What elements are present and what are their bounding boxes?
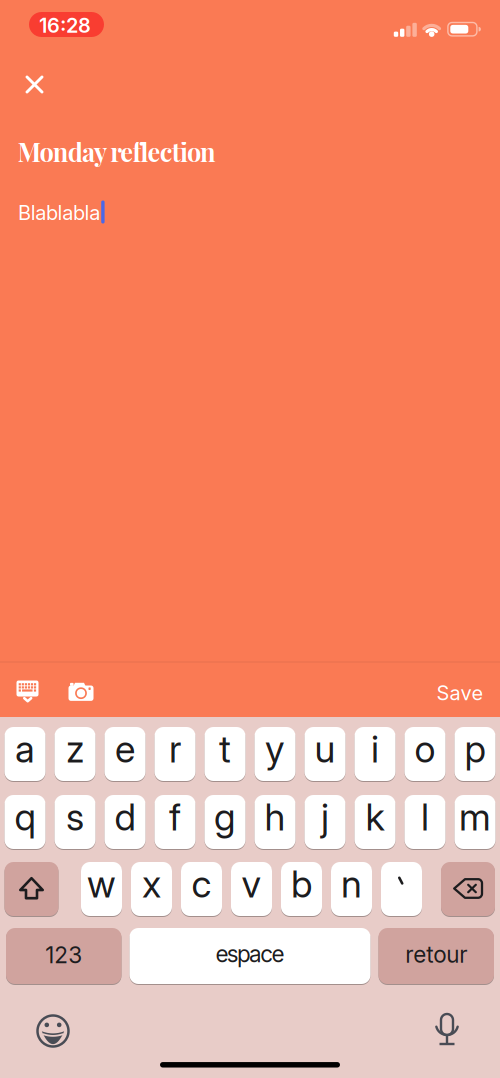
staticText: n — [341, 861, 362, 907]
staticText: t — [219, 726, 231, 772]
button[interactable]: y — [254, 727, 295, 781]
staticText: l — [421, 794, 429, 840]
staticText: g — [214, 794, 236, 840]
button[interactable]: n — [331, 862, 372, 916]
button[interactable]: z — [54, 727, 95, 781]
button[interactable]: Return — [378, 928, 494, 984]
button[interactable]: t — [204, 727, 245, 781]
staticText: v — [241, 861, 261, 907]
staticText: o — [414, 726, 435, 772]
staticText: h — [264, 794, 285, 840]
button[interactable]: g — [204, 795, 245, 849]
staticText: e — [115, 726, 135, 772]
button[interactable]: Delete — [441, 862, 495, 916]
button[interactable]: b — [281, 862, 322, 916]
button[interactable]: Shift — [4, 862, 58, 916]
button[interactable]: m — [454, 795, 495, 849]
button[interactable]: j — [304, 795, 345, 849]
staticText: p — [464, 726, 485, 772]
staticText: j — [321, 794, 329, 840]
staticText: 16:28 — [39, 13, 91, 38]
button[interactable]: Close — [17, 67, 52, 102]
button[interactable]: l — [404, 795, 445, 849]
button[interactable]: i — [354, 727, 395, 781]
staticText: w — [87, 861, 116, 907]
staticText: b — [291, 861, 312, 907]
button[interactable]: a — [4, 727, 45, 781]
staticText: Save — [436, 681, 483, 705]
button[interactable]: s — [54, 795, 95, 849]
staticText: s — [66, 794, 84, 840]
staticText: z — [66, 726, 84, 772]
button[interactable]: f — [154, 795, 195, 849]
button[interactable]: Numbers — [6, 928, 121, 984]
button[interactable]: Save — [430, 677, 489, 709]
button[interactable]: Backtick — [381, 862, 422, 916]
staticText: 123 — [45, 941, 82, 969]
staticText: u — [314, 726, 335, 772]
staticText: y — [265, 726, 285, 772]
button[interactable]: u — [304, 727, 345, 781]
button[interactable]: q — [4, 795, 45, 849]
staticText: m — [459, 794, 491, 840]
staticText: f — [169, 794, 181, 840]
button[interactable]: Emoji — [36, 1014, 70, 1048]
button[interactable]: o — [404, 727, 445, 781]
button[interactable]: Screen recording — [29, 12, 104, 37]
button[interactable]: r — [154, 727, 195, 781]
staticText: Blablabla — [18, 200, 100, 225]
button[interactable]: h — [254, 795, 295, 849]
staticText: i — [371, 726, 379, 772]
button[interactable]: e — [104, 727, 145, 781]
button[interactable]: v — [231, 862, 272, 916]
staticText: q — [14, 794, 35, 840]
button[interactable]: Dismiss keyboard — [8, 672, 46, 710]
button[interactable]: w — [81, 862, 122, 916]
button[interactable]: d — [104, 795, 145, 849]
button[interactable]: Dictation — [435, 1013, 459, 1047]
staticText: c — [191, 861, 211, 907]
staticText: k — [365, 794, 384, 840]
staticText: retour — [405, 941, 467, 968]
staticText: a — [15, 726, 35, 772]
button[interactable]: espace — [129, 928, 370, 984]
button[interactable]: c — [181, 862, 222, 916]
staticText: x — [142, 861, 161, 907]
staticText: Monday reflection — [17, 134, 216, 168]
staticText: d — [114, 794, 135, 840]
button[interactable]: p — [454, 727, 495, 781]
button[interactable]: k — [354, 795, 395, 849]
button[interactable]: Camera — [62, 676, 100, 708]
staticText: r — [169, 726, 181, 772]
button[interactable]: x — [131, 862, 172, 916]
staticText: espace — [215, 940, 284, 968]
